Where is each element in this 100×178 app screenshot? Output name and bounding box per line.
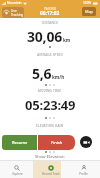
button[interactable]: Map: [82, 7, 96, 16]
staticText: 100%: [83, 1, 92, 5]
staticText: Resume: [12, 140, 28, 145]
staticText: ELEVATION GAIN: [36, 124, 64, 128]
staticText: 30,06: [27, 27, 63, 46]
button[interactable]: Live: [2, 7, 24, 18]
staticText: km/h: [52, 74, 65, 80]
staticText: Finish: [51, 140, 63, 145]
staticText: PAUSED: [44, 7, 57, 11]
staticText: Tracking: [11, 13, 24, 17]
button[interactable]: Show Elevation: [0, 154, 100, 160]
button[interactable]: Record Track: [34, 161, 67, 178]
staticText: Map: [85, 9, 93, 14]
staticText: AVERAGE SPEED: [37, 53, 63, 57]
staticText: Profile: [79, 172, 88, 176]
button[interactable]: Profile: [67, 161, 100, 178]
staticText: 05:23:49: [25, 96, 76, 114]
button[interactable]: Resume: [2, 135, 37, 150]
staticText: MOVING TIME: [38, 89, 62, 93]
staticText: Explore: [12, 172, 23, 176]
button[interactable]: Finish: [38, 135, 75, 150]
staticText: km: [63, 37, 71, 43]
staticText: Show Elevation: [35, 154, 65, 160]
staticText: 06:17:02: [40, 10, 60, 17]
button[interactable]: Explore: [0, 161, 34, 178]
staticText: DISTANCE: [42, 21, 59, 25]
staticText: Mountain: [7, 1, 22, 5]
button[interactable]: Record video: [80, 136, 92, 148]
staticText: Record Track: [42, 172, 60, 176]
staticText: 5,6: [32, 64, 52, 83]
staticText: Live: [11, 9, 17, 13]
